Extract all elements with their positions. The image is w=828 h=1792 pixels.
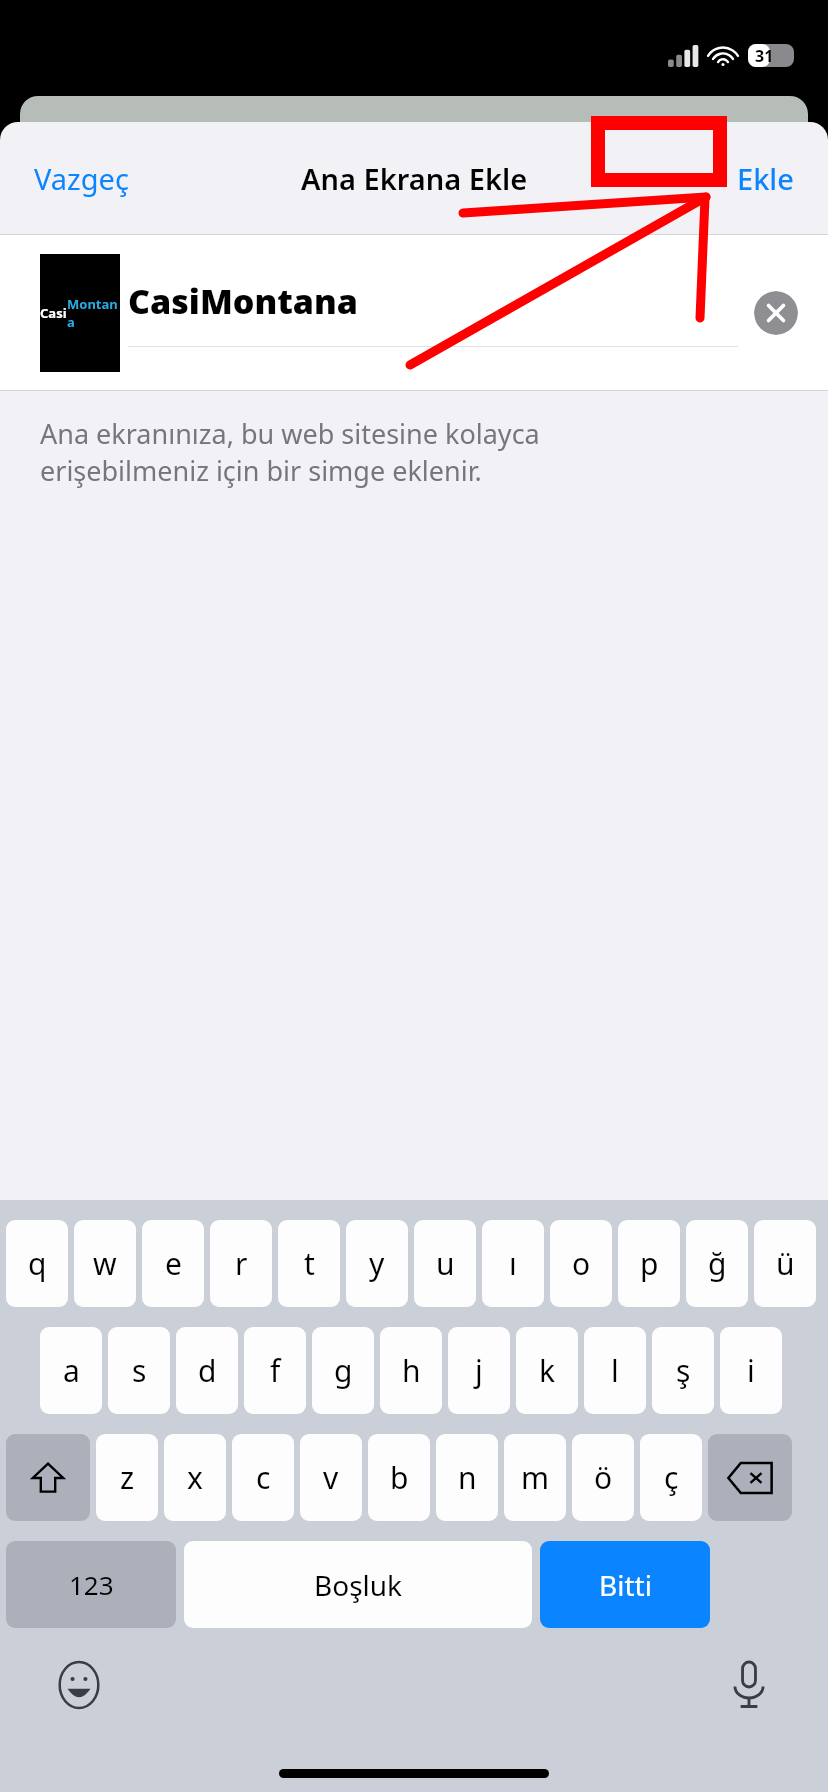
button[interactable]: p <box>618 1220 680 1307</box>
staticText: r <box>235 1243 248 1284</box>
staticText: x <box>187 1457 203 1498</box>
staticText: Ekle <box>737 159 794 198</box>
staticText: c <box>256 1457 271 1498</box>
staticText: Montana <box>67 295 120 331</box>
staticText: v <box>323 1457 339 1498</box>
button[interactable]: q <box>6 1220 68 1307</box>
staticText: Ana ekranınıza, bu web sitesine kolayca … <box>40 415 698 489</box>
staticText: z <box>120 1457 135 1498</box>
button[interactable]: v <box>300 1434 362 1521</box>
staticText: ğ <box>708 1243 727 1284</box>
staticText: b <box>390 1457 409 1498</box>
button[interactable]: f <box>244 1327 306 1414</box>
button[interactable]: j <box>448 1327 510 1414</box>
button[interactable]: s <box>108 1327 170 1414</box>
staticText: s <box>132 1350 147 1391</box>
staticText: d <box>198 1350 217 1391</box>
staticText: Bitti <box>599 1566 652 1604</box>
staticText: h <box>402 1350 421 1391</box>
staticText: Vazgeç <box>34 159 129 198</box>
button[interactable]: z <box>96 1434 158 1521</box>
button[interactable]: u <box>414 1220 476 1307</box>
staticText: u <box>436 1243 455 1284</box>
button[interactable]: ç <box>640 1434 702 1521</box>
button[interactable]: ö <box>572 1434 634 1521</box>
button[interactable]: ı <box>482 1220 544 1307</box>
button[interactable]: n <box>436 1434 498 1521</box>
button[interactable]: ü <box>754 1220 816 1307</box>
button[interactable]: Shift <box>6 1434 90 1521</box>
staticText: q <box>28 1243 47 1284</box>
button[interactable]: e <box>142 1220 204 1307</box>
button[interactable]: Sil <box>708 1434 792 1521</box>
button[interactable]: Ekle <box>721 151 810 206</box>
staticText: Boşluk <box>314 1566 403 1604</box>
staticText: y <box>369 1243 385 1284</box>
staticText: ş <box>676 1350 691 1391</box>
button[interactable]: Bitti <box>540 1541 710 1628</box>
button[interactable]: l <box>584 1327 646 1414</box>
staticText: ı <box>509 1243 517 1284</box>
button[interactable]: Vazgeç <box>18 151 145 206</box>
staticText: ü <box>776 1243 795 1284</box>
button[interactable]: g <box>312 1327 374 1414</box>
button[interactable]: Emoji <box>50 1656 108 1714</box>
staticText: Ana Ekrana Ekle <box>301 159 528 198</box>
staticText: a <box>63 1350 80 1391</box>
staticText: CasiMontana <box>128 278 358 324</box>
button[interactable]: b <box>368 1434 430 1521</box>
button[interactable]: o <box>550 1220 612 1307</box>
button[interactable]: Temizle <box>754 291 798 335</box>
staticText: f <box>270 1350 281 1391</box>
button[interactable]: x <box>164 1434 226 1521</box>
other: Sil <box>727 1461 773 1495</box>
button[interactable]: ğ <box>686 1220 748 1307</box>
staticText: e <box>165 1243 182 1284</box>
button[interactable]: r <box>210 1220 272 1307</box>
button[interactable]: w <box>74 1220 136 1307</box>
staticText: Casi <box>40 304 67 322</box>
button[interactable]: Mikrofon <box>720 1656 778 1714</box>
staticText: 123 <box>69 1567 114 1602</box>
staticText: j <box>475 1350 483 1391</box>
staticText: w <box>93 1243 117 1284</box>
button[interactable]: a <box>40 1327 102 1414</box>
button[interactable]: h <box>380 1327 442 1414</box>
staticText: t <box>304 1243 315 1284</box>
button[interactable]: Boşluk <box>184 1541 532 1628</box>
staticText: l <box>611 1350 619 1391</box>
button[interactable]: y <box>346 1220 408 1307</box>
staticText: o <box>572 1243 591 1284</box>
other: Shift <box>28 1458 68 1498</box>
staticText: ç <box>664 1457 679 1498</box>
button[interactable]: ş <box>652 1327 714 1414</box>
button[interactable]: i <box>720 1327 782 1414</box>
button[interactable]: m <box>504 1434 566 1521</box>
button[interactable]: k <box>516 1327 578 1414</box>
staticText: ö <box>594 1457 613 1498</box>
button[interactable]: c <box>232 1434 294 1521</box>
staticText: p <box>640 1243 659 1284</box>
staticText: n <box>458 1457 477 1498</box>
button[interactable]: t <box>278 1220 340 1307</box>
staticText: 31 <box>755 45 774 67</box>
staticText: g <box>334 1350 353 1391</box>
staticText: i <box>747 1350 755 1391</box>
staticText: m <box>521 1457 550 1498</box>
button[interactable]: d <box>176 1327 238 1414</box>
staticText: k <box>539 1350 556 1391</box>
button[interactable]: 123 <box>6 1541 176 1628</box>
